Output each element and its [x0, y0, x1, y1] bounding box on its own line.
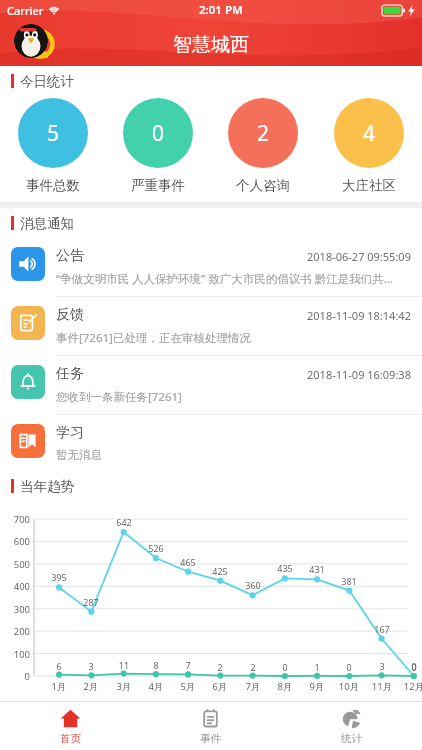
- staticText: 1: [303, 661, 331, 673]
- staticText: 3月: [110, 680, 138, 693]
- staticText: 智慧城西: [173, 33, 249, 57]
- staticText: 2月: [77, 680, 105, 693]
- staticText: 2:01 PM: [199, 2, 243, 18]
- staticText: 500: [2, 558, 30, 571]
- staticText: 2: [239, 661, 267, 673]
- staticText: 7月: [239, 680, 267, 693]
- staticText: 167: [368, 623, 396, 635]
- staticText: 消息通知: [20, 215, 74, 232]
- staticText: 395: [45, 571, 73, 583]
- button[interactable]: 首页: [0, 702, 140, 750]
- staticText: 暂无消息: [56, 448, 102, 462]
- staticText: 事件: [200, 732, 221, 745]
- staticText: 任务: [56, 365, 84, 383]
- button[interactable]: 学习: [0, 415, 422, 471]
- staticText: 0: [400, 661, 422, 673]
- staticText: 600: [2, 535, 30, 548]
- staticText: 7: [174, 659, 202, 671]
- staticText: 5: [47, 119, 60, 148]
- staticText: 4月: [142, 680, 170, 693]
- staticText: Carrier: [7, 3, 44, 18]
- button[interactable]: 统计: [281, 702, 422, 750]
- staticText: 200: [2, 625, 30, 638]
- staticText: 100: [2, 648, 30, 661]
- staticText: 个人咨询: [236, 177, 290, 194]
- staticText: 严重事件: [131, 177, 185, 194]
- staticText: 431: [303, 563, 331, 575]
- staticText: 学习: [56, 424, 84, 442]
- staticText: 2018-11-09 16:09:38: [307, 367, 411, 382]
- staticText: 10月: [335, 680, 363, 693]
- staticText: 642: [110, 516, 138, 528]
- staticText: 当年趋势: [20, 478, 74, 495]
- staticText: 381: [335, 575, 363, 587]
- staticText: 公告: [56, 247, 84, 265]
- staticText: 今日统计: [20, 73, 74, 90]
- button[interactable]: 0: [105, 98, 210, 194]
- staticText: 11月: [368, 680, 396, 693]
- staticText: 事件总数: [26, 177, 80, 194]
- staticText: 425: [206, 565, 234, 577]
- staticText: 8月: [271, 680, 299, 693]
- staticText: 5月: [174, 680, 202, 693]
- staticText: 反馈: [56, 306, 84, 324]
- staticText: 大庄社区: [342, 177, 396, 194]
- staticText: 4: [363, 119, 376, 148]
- staticText: 统计: [341, 732, 362, 745]
- staticText: 3: [368, 660, 396, 672]
- staticText: 465: [174, 556, 202, 568]
- button[interactable]: 5: [0, 98, 105, 194]
- staticText: 9月: [303, 680, 331, 693]
- staticText: 287: [77, 596, 105, 608]
- staticText: “争做文明市民 人人保护环境” 致广大市民的倡议书 黔江是我们共…: [56, 271, 393, 287]
- staticText: 6月: [206, 680, 234, 693]
- staticText: 300: [2, 603, 30, 616]
- button[interactable]: 2: [210, 98, 316, 194]
- staticText: 事件[7261]已处理，正在审核处理情况: [56, 330, 251, 346]
- staticText: 1月: [45, 680, 73, 693]
- staticText: 3: [77, 660, 105, 672]
- staticText: 2: [257, 119, 270, 148]
- staticText: 2018-06-27 09:55:09: [307, 249, 411, 264]
- button[interactable]: 任务: [0, 356, 422, 415]
- staticText: 0: [271, 661, 299, 673]
- button[interactable]: Profile avatar: [14, 24, 48, 58]
- staticText: 11: [110, 659, 138, 671]
- staticText: 700: [2, 513, 30, 526]
- staticText: 360: [239, 579, 267, 591]
- staticText: 2: [206, 661, 234, 673]
- staticText: 0: [2, 670, 30, 683]
- staticText: 12月: [400, 680, 422, 693]
- staticText: 0: [400, 660, 422, 672]
- staticText: 首页: [60, 732, 81, 745]
- button[interactable]: 4: [316, 98, 422, 194]
- staticText: 526: [142, 542, 170, 554]
- button[interactable]: 公告: [0, 238, 422, 297]
- staticText: 0: [152, 119, 165, 148]
- staticText: 6: [45, 660, 73, 672]
- staticText: 8: [142, 659, 170, 671]
- staticText: 400: [2, 580, 30, 593]
- staticText: 0: [335, 661, 363, 673]
- staticText: 2018-11-09 18:14:42: [307, 308, 411, 323]
- staticText: 您收到一条新任务[7261]: [56, 389, 182, 405]
- button[interactable]: 事件: [140, 702, 281, 750]
- button[interactable]: 反馈: [0, 297, 422, 356]
- staticText: 435: [271, 562, 299, 574]
